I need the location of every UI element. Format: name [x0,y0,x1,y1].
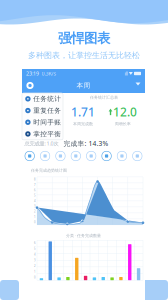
staticText: 23:19 [26,70,39,77]
staticText: 任务完成趋势统计图 [31,168,67,173]
staticText: 多种图表，让掌控生活无比轻松 [28,50,140,60]
button[interactable]: 时间手账 [22,116,63,128]
staticText: 4 [34,199,36,203]
staticText: 重复任务 [33,106,61,115]
staticText: 0 [34,276,36,279]
staticText: 1 [34,215,36,219]
staticText: 分类 · 任务完成数量 [66,233,101,238]
staticText: 时间手账 [33,118,61,126]
staticText: 0 [34,220,36,224]
staticText: 3 [34,204,36,208]
staticText: 任务统计 [33,95,61,103]
button[interactable]: 掌控平衡 [22,128,63,140]
staticText: 4 [34,253,36,256]
button[interactable]: Menu [25,80,34,90]
staticText: 12.0 [113,104,137,120]
button[interactable]: Tool 4 [70,150,82,162]
staticText: 本周完成数 [73,121,93,126]
staticText: 强悍图表 [58,30,110,46]
button[interactable]: Tool 1 [24,150,36,162]
staticText: ıll [125,70,128,77]
staticText: 任务统计汇总表 [90,95,118,100]
staticText: 1 [34,270,36,273]
button[interactable]: More [135,80,141,90]
staticText: 2 [34,264,36,268]
staticText: 6 [34,188,36,192]
staticText: 8 [34,178,36,181]
staticText: 5 [34,247,36,250]
button[interactable]: 任务统计 [22,93,63,105]
button[interactable]: Tool 3 [54,150,66,162]
staticText: 6 [34,241,36,245]
staticText: 3 [34,258,36,262]
staticText: 掌控平衡 [33,130,61,138]
staticText: 2 [34,210,36,213]
staticText: 总完成量: 1.0次 [24,140,58,147]
button[interactable]: Tool 2 [39,150,51,162]
button[interactable]: Tool 5 [85,150,97,162]
staticText: 5 [34,194,36,197]
button[interactable]: 重复任务 [22,105,63,116]
staticText: 7 [34,183,36,187]
button[interactable]: Tool 6 [101,150,113,162]
staticText: 1.71 [71,104,95,120]
staticText: 本周 [76,81,90,90]
staticText: 完成率: 14.3% [63,139,108,148]
staticText: 周增长率 [115,121,131,126]
staticText: 0.3K/s [41,70,56,77]
button[interactable]: Tool 8 [131,150,143,162]
button[interactable]: Tool 7 [116,150,128,162]
